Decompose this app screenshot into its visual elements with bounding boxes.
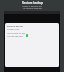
staticText: Include app data: [7, 35, 23, 38]
button[interactable]: Backup details: [5, 25, 59, 28]
staticText: Google Drive: [7, 28, 20, 31]
staticText: Backup details: [7, 25, 23, 28]
staticText: Restore backup: [22, 1, 43, 5]
staticText: Last backup 2h ago: [7, 32, 26, 35]
button[interactable]: Google Drive: [5, 28, 59, 31]
staticText: to restore settings: [23, 7, 42, 10]
staticText: Select a backup file: [22, 5, 42, 8]
button[interactable]: Last backup 2h ago: [5, 32, 59, 35]
button[interactable]: Include app data: [5, 35, 59, 38]
